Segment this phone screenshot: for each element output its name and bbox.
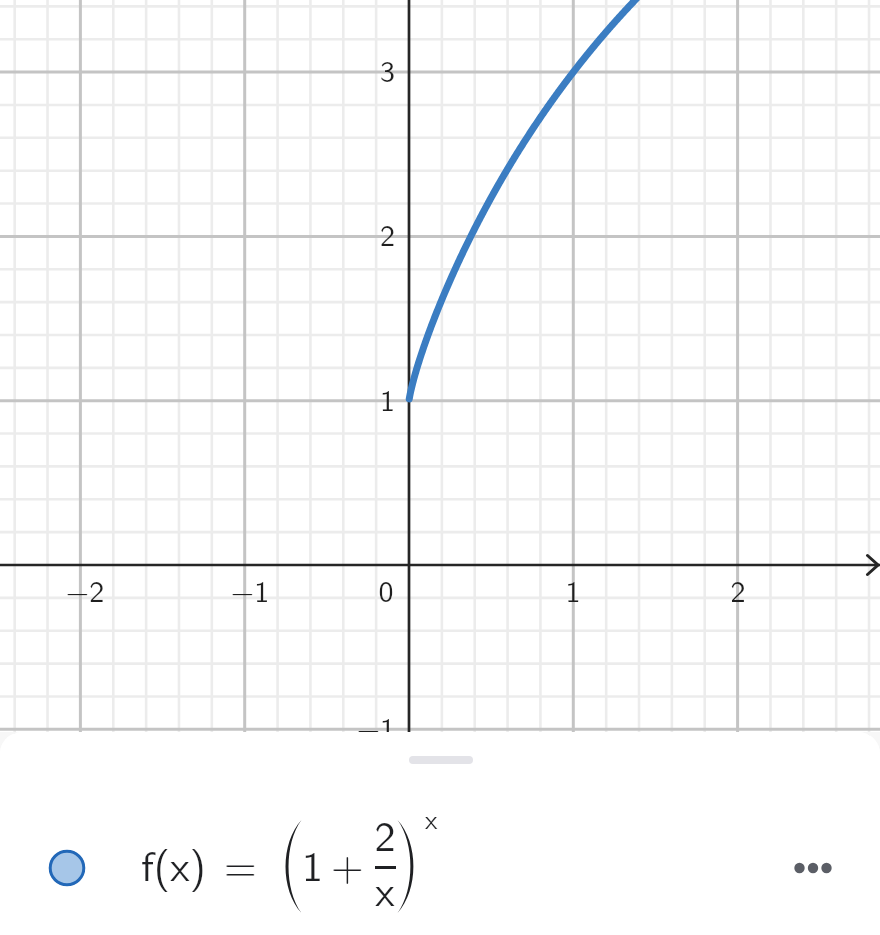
staticText: 1 — [533, 567, 613, 611]
staticText: 2 — [340, 211, 395, 255]
staticText: 3 — [340, 47, 395, 91]
staticText: 1 — [302, 833, 324, 894]
staticText: + — [331, 833, 364, 894]
button[interactable] — [110, 810, 760, 928]
staticText: x — [372, 858, 398, 919]
button[interactable]: More options — [785, 840, 841, 896]
staticText: 1 — [340, 376, 395, 420]
staticText: −2 — [45, 567, 125, 611]
staticText: −1 — [340, 704, 395, 748]
staticText: f(x) — [141, 833, 206, 894]
staticText: 2 — [372, 803, 398, 864]
staticText: = — [224, 833, 257, 894]
button[interactable]: Expand expression list — [409, 756, 473, 764]
staticText: 2 — [698, 567, 778, 611]
staticText: x — [425, 798, 438, 838]
button[interactable]: Toggle plot visibility — [48, 849, 86, 887]
staticText: −1 — [210, 567, 290, 611]
staticText: 0 — [346, 567, 426, 611]
